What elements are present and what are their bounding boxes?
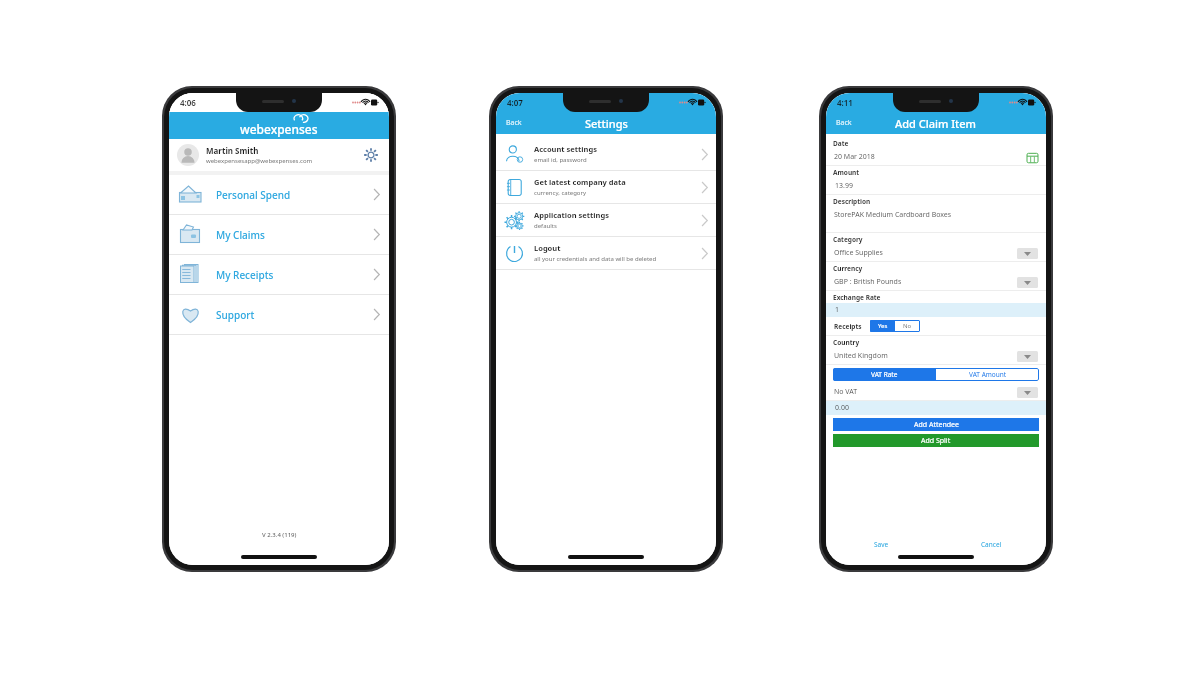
staticText: currency, category [534, 189, 587, 197]
staticText: My Receipts [216, 268, 274, 282]
staticText: StorePAK Medium Cardboard Boxes [834, 210, 952, 220]
staticText: webexpenses [240, 121, 318, 137]
staticText: Receipts [834, 322, 862, 331]
button[interactable]: My Receipts [169, 255, 389, 294]
button[interactable]: 20 Mar 2018 [826, 149, 1046, 165]
button[interactable]: Support [169, 295, 389, 334]
button[interactable]: Back [826, 112, 862, 134]
staticText: email id, password [534, 156, 587, 164]
staticText: Exchange Rate [833, 293, 881, 302]
staticText: 1 [835, 305, 840, 315]
staticText: No VAT [834, 387, 858, 397]
staticText: No [903, 322, 912, 330]
staticText: VAT Amount [969, 370, 1007, 379]
staticText: Amount [833, 168, 860, 177]
staticText: 4:07 [507, 97, 523, 108]
staticText: Yes [878, 322, 888, 330]
button[interactable]: Add Attendee [833, 418, 1039, 431]
staticText: Category [833, 235, 863, 244]
staticText: Save [874, 540, 889, 549]
staticText: V 2.3.4 (119) [262, 531, 297, 539]
staticText: 4:06 [180, 97, 196, 108]
staticText: Get latest company data [534, 177, 626, 187]
button[interactable]: Add Split [833, 434, 1039, 447]
button[interactable]: 0.00 [826, 401, 1046, 415]
staticText: 13.99 [835, 181, 853, 191]
staticText: Add Split [921, 436, 951, 446]
staticText: 20 Mar 2018 [834, 152, 875, 162]
button[interactable]: Application settings [496, 204, 716, 236]
staticText: Add Attendee [914, 420, 959, 430]
button[interactable]: Settings [361, 145, 381, 165]
staticText: Support [216, 308, 255, 322]
button[interactable]: Office Supplies [826, 245, 1046, 261]
other: Pick date [1027, 152, 1038, 163]
staticText: Back [836, 118, 852, 128]
button[interactable]: GBP : British Pounds [826, 274, 1046, 290]
staticText: Logout [534, 243, 561, 253]
button[interactable]: StorePAK Medium Cardboard Boxes [826, 207, 1046, 232]
staticText: all your credentials and data will be de… [534, 255, 657, 263]
button[interactable]: Yes [870, 320, 895, 332]
staticText: Cancel [981, 540, 1002, 549]
button[interactable]: Back [496, 112, 532, 134]
staticText: Country [833, 338, 860, 347]
staticText: 4:11 [837, 97, 853, 108]
button[interactable]: United Kingdom [826, 348, 1046, 364]
button[interactable]: Martin Smith [169, 139, 389, 171]
staticText: Back [506, 118, 522, 128]
button[interactable]: Save [826, 535, 936, 553]
staticText: Settings [585, 116, 628, 131]
button[interactable]: Cancel [936, 535, 1046, 553]
button[interactable]: VAT Rate [833, 368, 936, 381]
staticText: Account settings [534, 144, 597, 154]
staticText: webexpensesapp@webexpenses.com [206, 157, 313, 165]
button[interactable]: Personal Spend [169, 175, 389, 214]
staticText: Office Supplies [834, 248, 883, 258]
staticText: 0.00 [835, 403, 849, 413]
button[interactable]: VAT Amount [936, 368, 1039, 381]
button[interactable]: No [895, 320, 920, 332]
button[interactable]: Get latest company data [496, 171, 716, 203]
staticText: Martin Smith [206, 145, 259, 156]
button[interactable]: Account settings [496, 138, 716, 170]
staticText: Currency [833, 264, 863, 273]
staticText: VAT Rate [871, 370, 898, 379]
staticText: Date [833, 139, 849, 148]
button[interactable]: My Claims [169, 215, 389, 254]
button[interactable]: No VAT [826, 384, 1046, 400]
staticText: My Claims [216, 228, 265, 242]
staticText: Application settings [534, 210, 609, 220]
staticText: GBP : British Pounds [834, 277, 902, 287]
staticText: Personal Spend [216, 188, 291, 202]
button[interactable]: Logout [496, 237, 716, 269]
button[interactable]: 13.99 [826, 178, 1046, 194]
staticText: Add Claim Item [895, 116, 977, 131]
button[interactable]: 1 [826, 303, 1046, 317]
staticText: Description [833, 197, 871, 206]
staticText: defaults [534, 222, 557, 230]
staticText: United Kingdom [834, 351, 888, 361]
